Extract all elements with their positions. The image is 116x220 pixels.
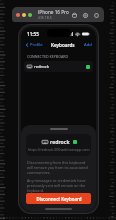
staticText: Profile bbox=[30, 42, 43, 48]
staticText: Keyboards bbox=[51, 42, 75, 48]
button[interactable]: Add bbox=[84, 42, 92, 48]
button[interactable]: Minimize bbox=[22, 13, 26, 17]
button[interactable]: Profile bbox=[25, 42, 43, 48]
button[interactable]: redrock bbox=[24, 61, 93, 72]
staticText: Disconnecting from this keyboard will re… bbox=[27, 160, 90, 175]
button[interactable]: Home bbox=[70, 11, 78, 19]
staticText: https://redrock.000webhostapp.com bbox=[28, 147, 90, 152]
button[interactable]: Disconnect Keyboard bbox=[26, 193, 91, 204]
staticText: Disconnect Keyboard bbox=[36, 196, 82, 202]
button[interactable]: redrock bbox=[26, 134, 91, 156]
staticText: Add bbox=[84, 42, 92, 48]
staticText: iOS 18.5 bbox=[38, 15, 52, 20]
staticText: redrock bbox=[34, 64, 50, 70]
staticText: Any messages or credentials have previou… bbox=[27, 178, 90, 193]
button[interactable]: Close bbox=[16, 13, 20, 17]
staticText: iPhone 16 Pro bbox=[38, 9, 69, 15]
button[interactable]: Settings bbox=[81, 11, 89, 19]
button[interactable]: More bbox=[92, 11, 100, 19]
button[interactable]: Maximize bbox=[28, 13, 32, 17]
staticText: CONNECTED KEYBOARD bbox=[27, 54, 69, 59]
staticText: 11:55 bbox=[27, 31, 39, 37]
staticText: redrock bbox=[50, 138, 70, 145]
